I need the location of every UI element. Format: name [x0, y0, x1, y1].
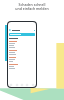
- other: Back: [9, 29, 11, 31]
- button[interactable]: Tab: [31, 83, 35, 87]
- button[interactable]: Tab: [20, 83, 24, 87]
- button[interactable]: Tab: [25, 83, 29, 87]
- button[interactable]: Back: [8, 28, 36, 32]
- staticText: Schaden schnell und einfach melden: [15, 2, 49, 11]
- button[interactable]: [9, 33, 35, 36]
- button[interactable]: Tab: [9, 83, 13, 87]
- button[interactable]: Tab: [15, 83, 19, 87]
- button[interactable]: More: [33, 29, 35, 31]
